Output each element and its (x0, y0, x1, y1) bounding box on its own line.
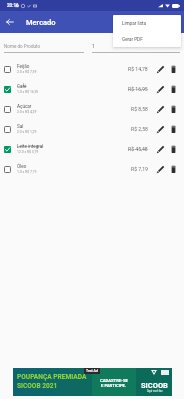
staticText: 12.0 x R$ 3,79 (17, 150, 39, 154)
button[interactable]: Edit (155, 84, 165, 94)
staticText: 2.0 x R$ 7,39 (17, 70, 37, 74)
staticText: Aqui você faz (147, 390, 163, 393)
staticText: 2.0 x R$ 4,29 (17, 110, 37, 114)
staticText: Sal (17, 124, 24, 129)
button[interactable]: Edit (155, 164, 165, 174)
button[interactable]: Toggle Leite integral (0, 139, 184, 159)
button[interactable]: Back (3, 15, 17, 29)
staticText: 2.0 x R$ 1,29 (17, 130, 37, 134)
button[interactable]: Delete (168, 64, 178, 74)
staticText: R$ 7,19 (131, 166, 148, 172)
button[interactable]: Toggle Açúcar (0, 99, 184, 119)
staticText: Feijão (17, 64, 30, 69)
staticText: SICOOB (141, 381, 168, 390)
staticText: Gerar PDF (122, 37, 143, 42)
button[interactable]: Delete (168, 84, 178, 94)
button[interactable]: Delete (168, 164, 178, 174)
button[interactable]: Gerar PDF (113, 31, 181, 47)
button[interactable]: Toggle Sal (1, 123, 13, 135)
button[interactable]: POUPANÇA PREMIADA (13, 368, 172, 396)
button[interactable]: Edit (155, 64, 165, 74)
button[interactable]: Delete (168, 144, 178, 154)
button[interactable]: Edit (155, 124, 165, 134)
button[interactable]: Toggle Café (0, 79, 184, 99)
staticText: R$ 45,48 (128, 146, 148, 152)
button[interactable]: Toggle Leite integral (1, 143, 13, 155)
button[interactable]: Edit (155, 144, 165, 154)
staticText: SICOOB 2021 (17, 382, 58, 390)
staticText: Nome do Produto (4, 44, 41, 49)
button[interactable]: Toggle Óleo (1, 163, 13, 175)
staticText: Óleo (17, 164, 27, 169)
staticText: R$ 2,58 (131, 126, 148, 132)
staticText: Leite integral (17, 144, 44, 149)
button[interactable]: Delete (168, 124, 178, 134)
staticText: E PARTICIPE. (101, 383, 127, 388)
staticText: 1.0 x R$ 7,19 (17, 170, 37, 174)
button[interactable]: Edit (155, 104, 165, 114)
staticText: 1.0 x R$ 16,95 (17, 90, 39, 94)
button[interactable]: Toggle Sal (0, 119, 184, 139)
staticText: CADASTRE-SE (100, 378, 128, 383)
button[interactable]: Toggle Feijão (0, 59, 184, 79)
staticText: 20:16 (7, 3, 19, 8)
button[interactable]: Limpar lista (113, 15, 181, 31)
staticText: R$ 16,95 (128, 86, 148, 92)
button[interactable]: Delete (168, 104, 178, 114)
staticText: R$ 8,58 (131, 106, 148, 112)
staticText: 1 (92, 44, 95, 49)
button[interactable]: Toggle Feijão (1, 63, 13, 75)
button[interactable]: Toggle Café (1, 83, 13, 95)
staticText: Mercado (26, 18, 56, 27)
staticText: Café (17, 84, 27, 89)
button[interactable]: Toggle Óleo (0, 159, 184, 179)
staticText: Limpar lista (122, 21, 147, 26)
button[interactable]: Toggle Açúcar (1, 103, 13, 115)
staticText: Açúcar (17, 104, 32, 109)
staticText: POUPANÇA PREMIADA (17, 373, 87, 381)
staticText: R$ 14,78 (128, 66, 148, 72)
staticText: Test Ad (86, 369, 98, 373)
